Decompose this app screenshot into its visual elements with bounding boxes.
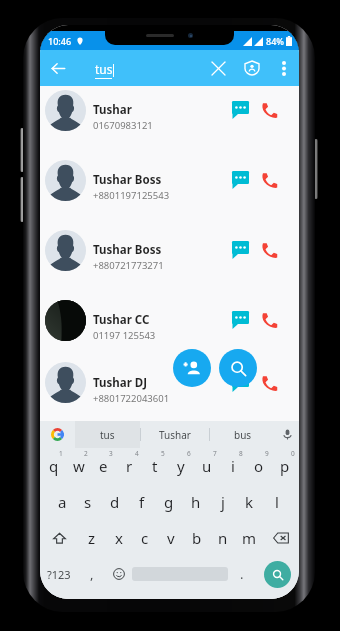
button[interactable]: bus: [210, 421, 275, 448]
staticText: m: [242, 528, 257, 548]
staticText: +880721773271: [93, 259, 164, 272]
button[interactable]: tus: [75, 421, 140, 448]
staticText: bus: [234, 428, 252, 442]
button[interactable]: i: [220, 448, 246, 484]
staticText: 10:46: [48, 35, 72, 47]
staticText: g: [164, 492, 174, 512]
button[interactable]: Message: [226, 236, 254, 264]
button[interactable]: z: [78, 520, 105, 556]
staticText: z: [88, 528, 96, 548]
button[interactable]: Search: [264, 561, 291, 588]
staticText: v: [167, 528, 175, 548]
button[interactable]: Tushar DJ: [40, 355, 299, 410]
staticText: .: [240, 565, 244, 583]
button[interactable]: Caller ID: [235, 51, 269, 85]
staticText: b: [192, 528, 202, 548]
staticText: w: [73, 456, 85, 476]
button[interactable]: Call: [254, 235, 284, 265]
button[interactable]: Back: [40, 50, 76, 86]
staticText: l: [275, 492, 279, 512]
button[interactable]: Tushar: [40, 75, 299, 145]
button[interactable]: v: [158, 520, 184, 556]
staticText: 6: [187, 449, 191, 458]
staticText: ,: [90, 565, 94, 583]
staticText: Tushar: [93, 102, 132, 118]
button[interactable]: More options: [269, 53, 299, 83]
button[interactable]: o: [246, 448, 272, 484]
button[interactable]: y: [168, 448, 194, 484]
staticText: tus: [100, 428, 115, 442]
staticText: Tushar CC: [93, 312, 150, 328]
staticText: o: [254, 456, 264, 476]
staticText: c: [141, 528, 149, 548]
button[interactable]: ,: [77, 556, 106, 592]
button[interactable]: Voice input: [275, 421, 299, 448]
button[interactable]: w: [66, 448, 91, 484]
button[interactable]: Tushar Boss: [40, 145, 299, 215]
button[interactable]: f: [128, 484, 155, 520]
button[interactable]: p: [272, 448, 298, 484]
button[interactable]: j: [209, 484, 236, 520]
staticText: s: [84, 492, 92, 512]
button[interactable]: q: [41, 448, 66, 484]
button[interactable]: .: [228, 556, 255, 592]
button[interactable]: c: [132, 520, 158, 556]
button[interactable]: ?123: [40, 556, 77, 592]
staticText: x: [115, 528, 123, 548]
button[interactable]: Call: [254, 165, 284, 195]
button[interactable]: t: [142, 448, 168, 484]
button[interactable]: k: [236, 484, 263, 520]
button[interactable]: s: [75, 484, 101, 520]
button[interactable]: d: [101, 484, 128, 520]
staticText: 5: [161, 449, 165, 458]
button[interactable]: Call: [254, 95, 284, 125]
button[interactable]: Tushar Boss: [40, 215, 299, 285]
staticText: h: [191, 492, 201, 512]
staticText: Tushar Boss: [93, 242, 162, 258]
staticText: Tushar: [159, 428, 191, 442]
button[interactable]: Call: [254, 368, 284, 398]
button[interactable]: Backspace: [262, 520, 299, 556]
button[interactable]: u: [194, 448, 220, 484]
button[interactable]: Call: [254, 305, 284, 335]
button[interactable]: m: [236, 520, 262, 556]
staticText: y: [177, 456, 185, 476]
staticText: 0: [291, 449, 295, 458]
staticText: j: [221, 492, 225, 512]
button[interactable]: Shift: [40, 520, 78, 556]
button[interactable]: b: [184, 520, 210, 556]
staticText: 2: [84, 449, 88, 458]
staticText: q: [49, 456, 59, 476]
button[interactable]: r: [116, 448, 142, 484]
staticText: ?123: [47, 567, 71, 582]
button[interactable]: a: [49, 484, 75, 520]
button[interactable]: Message: [226, 166, 254, 194]
staticText: 3: [109, 449, 113, 458]
button[interactable]: Message: [226, 96, 254, 124]
staticText: 01197 125543: [93, 329, 156, 342]
button[interactable]: Search: [219, 349, 257, 387]
button[interactable]: n: [210, 520, 236, 556]
button[interactable]: Tushar CC: [40, 285, 299, 355]
staticText: 9: [265, 449, 269, 458]
button[interactable]: Message: [226, 306, 254, 334]
button[interactable]: h: [182, 484, 209, 520]
button[interactable]: e: [91, 448, 116, 484]
staticText: 7: [213, 449, 217, 458]
staticText: 84%: [266, 35, 284, 47]
button[interactable]: g: [155, 484, 182, 520]
staticText: 1: [59, 449, 63, 458]
staticText: tus: [95, 61, 113, 77]
staticText: k: [245, 492, 254, 512]
staticText: 01670983121: [93, 119, 153, 132]
button[interactable]: x: [105, 520, 132, 556]
button[interactable]: Message: [226, 369, 254, 397]
button[interactable]: Emoji: [106, 556, 132, 592]
staticText: d: [110, 492, 120, 512]
button[interactable]: Clear: [201, 51, 235, 85]
button[interactable]: l: [263, 484, 290, 520]
button[interactable]: Add contact: [173, 349, 211, 387]
staticText: t: [152, 456, 158, 476]
button[interactable]: Tushar: [141, 421, 209, 448]
